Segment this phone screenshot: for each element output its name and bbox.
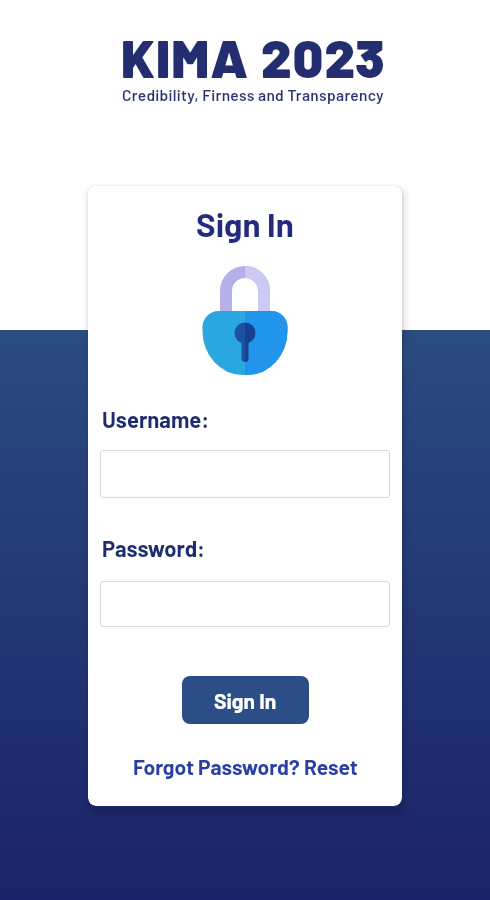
staticText: Username:	[102, 406, 210, 432]
staticText: Sign In	[196, 204, 294, 244]
staticText: Sign In	[214, 688, 277, 713]
button[interactable]	[100, 450, 390, 498]
button[interactable]: Sign In	[182, 676, 309, 724]
staticText: Password:	[102, 535, 206, 561]
staticText: Forgot Password? Reset	[133, 754, 358, 779]
staticText: Credibility, Firness and Transparency	[122, 85, 384, 104]
button[interactable]	[100, 581, 390, 627]
staticText: KIMA 2023	[121, 25, 386, 89]
button[interactable]: Forgot Password? Reset	[133, 754, 358, 779]
